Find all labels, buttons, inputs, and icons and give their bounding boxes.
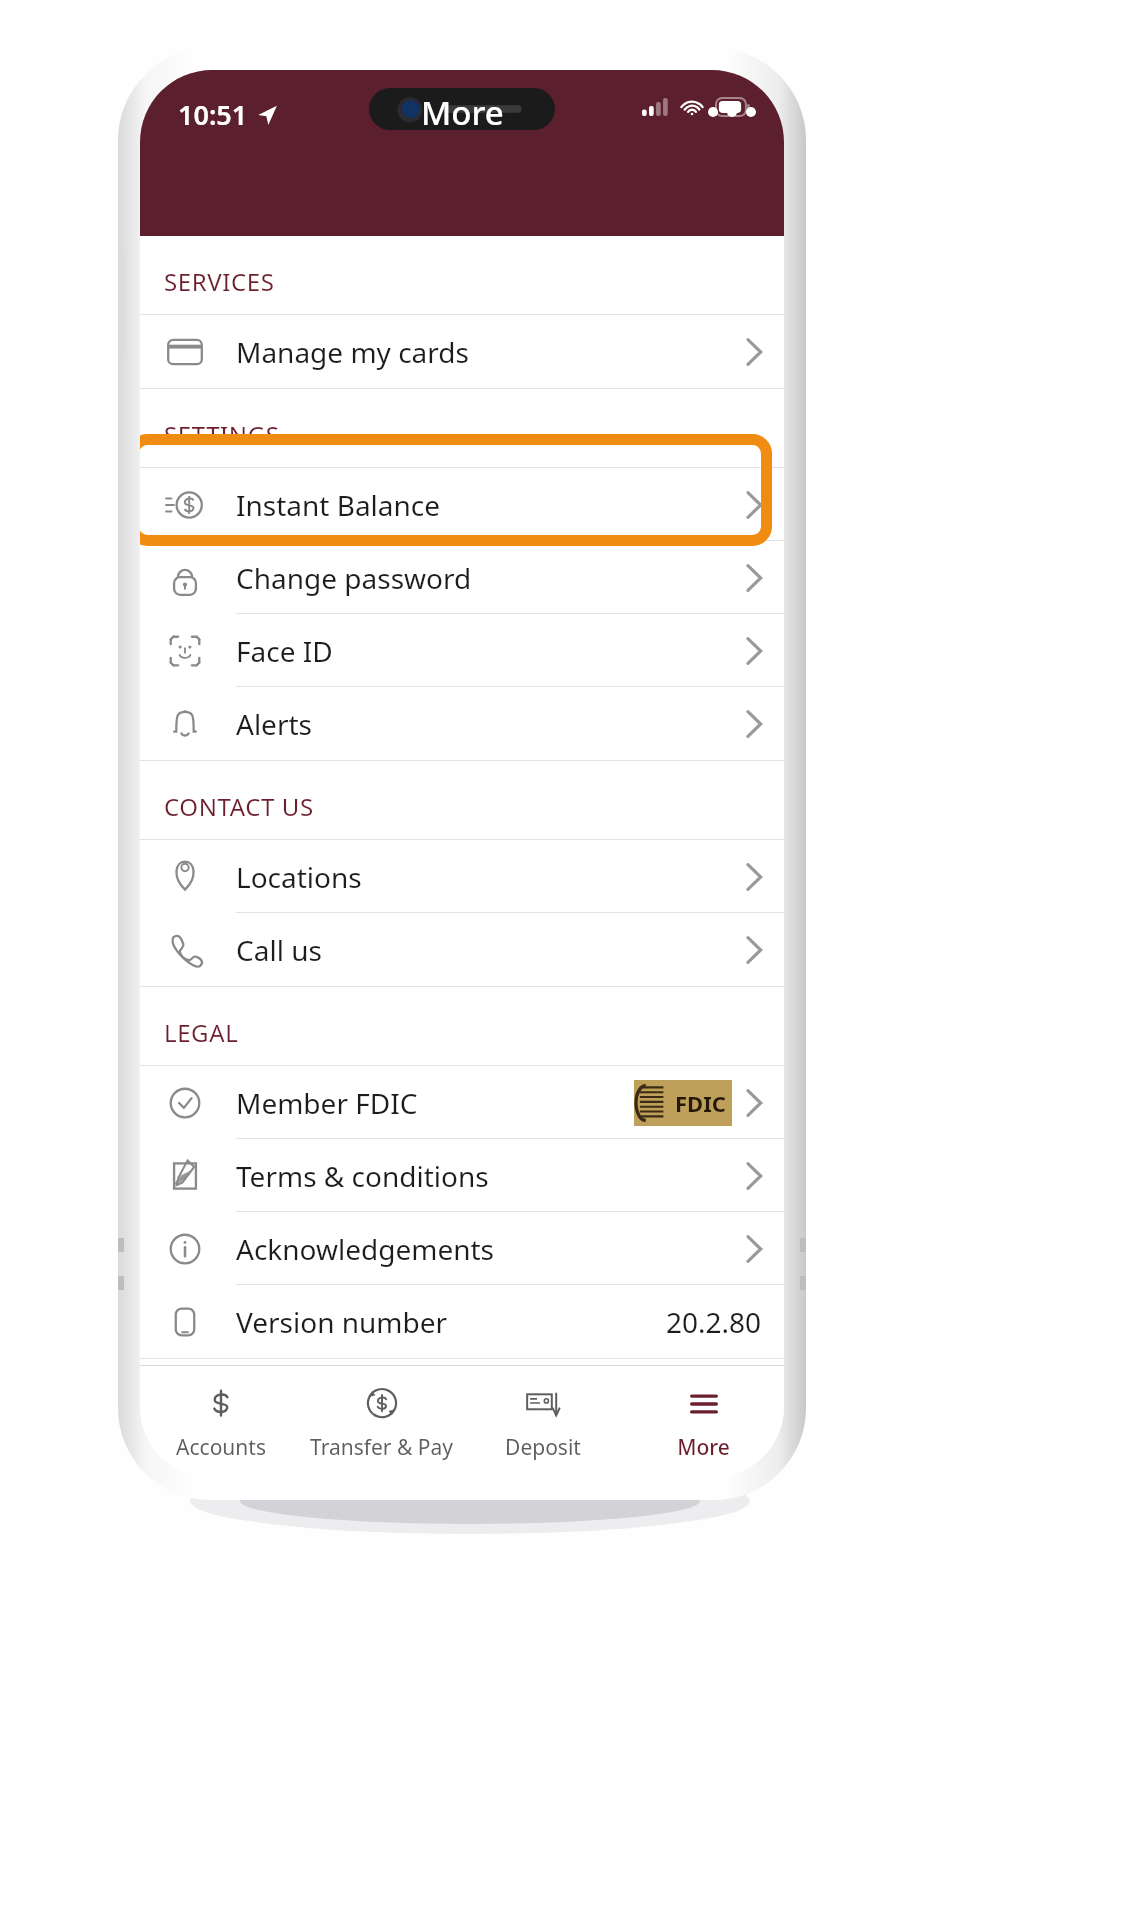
button[interactable]: Deposit xyxy=(462,1366,623,1478)
button[interactable]: Face ID xyxy=(140,614,784,687)
button[interactable]: More xyxy=(623,1366,784,1478)
staticText: SETTINGS xyxy=(164,418,280,451)
staticText: Terms & conditions xyxy=(236,1157,489,1195)
staticText: 20.2.80 xyxy=(666,1303,762,1341)
button[interactable]: Change password xyxy=(140,541,784,614)
button[interactable]: Version number xyxy=(140,1285,784,1358)
staticText: Face ID xyxy=(236,632,333,670)
staticText: Change password xyxy=(236,559,472,597)
button[interactable]: Instant Balance xyxy=(140,468,784,541)
staticText: Call us xyxy=(236,931,322,969)
staticText: 10:51 xyxy=(178,96,248,133)
button[interactable]: Alerts xyxy=(140,687,784,760)
staticText: SERVICES xyxy=(164,265,275,298)
staticText: CONTACT US xyxy=(164,790,314,823)
staticText: Member FDIC xyxy=(236,1084,418,1122)
staticText: Transfer & Pay xyxy=(310,1433,453,1462)
staticText: Manage my cards xyxy=(236,333,469,371)
staticText: Locations xyxy=(236,858,362,896)
button[interactable]: Terms & conditions xyxy=(140,1139,784,1212)
staticText: Deposit xyxy=(505,1433,581,1462)
staticText: Acknowledgements xyxy=(236,1230,495,1268)
staticText: Instant Balance xyxy=(236,486,441,524)
staticText: More xyxy=(677,1433,730,1462)
button[interactable]: Transfer & Pay xyxy=(301,1366,462,1478)
button[interactable]: Manage my cards xyxy=(140,315,784,388)
button[interactable]: More options xyxy=(696,76,768,148)
staticText: Accounts xyxy=(176,1433,266,1462)
staticText: LEGAL xyxy=(164,1016,239,1049)
button[interactable]: Locations xyxy=(140,840,784,913)
button[interactable]: Member FDIC xyxy=(140,1066,784,1139)
button[interactable]: Acknowledgements xyxy=(140,1212,784,1285)
staticText: FDIC xyxy=(675,1088,726,1118)
button[interactable]: Call us xyxy=(140,913,784,986)
button[interactable]: Accounts xyxy=(140,1366,301,1478)
staticText: Alerts xyxy=(236,705,312,743)
staticText: More xyxy=(421,90,504,135)
staticText: Version number xyxy=(236,1303,448,1341)
